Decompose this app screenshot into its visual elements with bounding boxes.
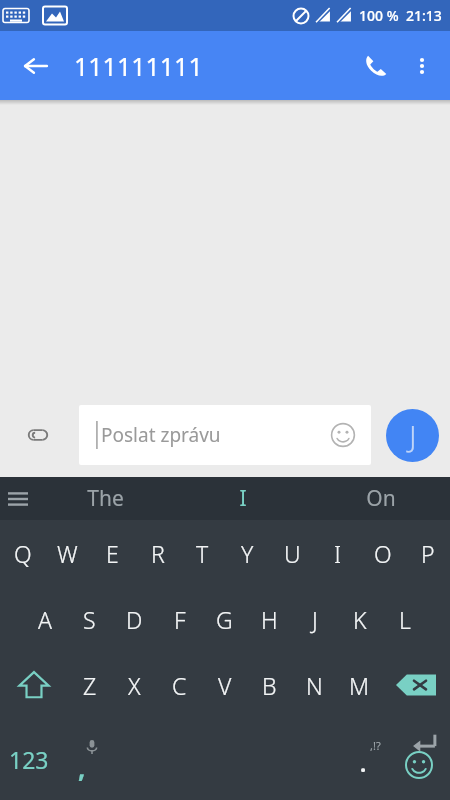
staticText: B: [262, 670, 277, 701]
button[interactable]: K: [337, 586, 382, 652]
staticText: P: [421, 538, 435, 569]
staticText: A: [38, 604, 52, 635]
staticText: W: [57, 538, 78, 569]
staticText: I: [334, 538, 342, 569]
button[interactable]: Q: [0, 520, 45, 586]
button[interactable]: F: [157, 586, 202, 652]
staticText: E: [106, 538, 119, 569]
button[interactable]: Comma and voice input: [58, 718, 105, 800]
button[interactable]: W: [45, 520, 90, 586]
button[interactable]: G: [202, 586, 247, 652]
button[interactable]: On: [312, 477, 450, 520]
staticText: D: [126, 604, 143, 635]
button[interactable]: Keyboard menu: [0, 477, 36, 520]
button[interactable]: X: [112, 652, 157, 718]
button[interactable]: 123: [0, 718, 58, 800]
button[interactable]: B: [247, 652, 292, 718]
button[interactable]: U: [270, 520, 315, 586]
staticText: On: [366, 484, 396, 513]
staticText: 100 %: [359, 6, 399, 25]
staticText: I: [239, 484, 247, 513]
button[interactable]: R: [135, 520, 180, 586]
staticText: 123: [9, 744, 49, 775]
button[interactable]: More options: [400, 44, 444, 88]
staticText: J: [312, 604, 318, 635]
staticText: S: [83, 604, 96, 635]
staticText: R: [151, 538, 165, 569]
staticText: O: [374, 538, 392, 569]
button[interactable]: Poslat zprávu: [79, 405, 371, 465]
staticText: M: [349, 670, 370, 701]
staticText: C: [172, 670, 187, 701]
staticText: X: [128, 670, 141, 701]
button[interactable]: O: [360, 520, 405, 586]
button[interactable]: Call: [352, 42, 400, 90]
button[interactable]: J: [292, 586, 337, 652]
staticText: ,!?: [370, 738, 381, 753]
staticText: H: [261, 604, 278, 635]
button[interactable]: L: [382, 586, 427, 652]
button[interactable]: Emoji: [323, 415, 363, 455]
staticText: Poslat zprávu: [101, 422, 221, 448]
staticText: .: [360, 748, 367, 778]
button[interactable]: D: [112, 586, 157, 652]
staticText: G: [216, 604, 233, 635]
button[interactable]: H: [247, 586, 292, 652]
button[interactable]: Shift: [0, 652, 67, 718]
button[interactable]: Period and punctuation: [340, 718, 387, 800]
button[interactable]: Emoji and enter: [387, 718, 450, 800]
staticText: Q: [14, 538, 32, 569]
staticText: 111111111: [74, 49, 203, 83]
button[interactable]: C: [157, 652, 202, 718]
button[interactable]: I: [315, 520, 360, 586]
button[interactable]: Attach: [18, 415, 58, 455]
button[interactable]: S: [67, 586, 112, 652]
button[interactable]: P: [405, 520, 450, 586]
button[interactable]: A: [22, 586, 67, 652]
staticText: N: [306, 670, 323, 701]
button[interactable]: V: [202, 652, 247, 718]
button[interactable]: E: [90, 520, 135, 586]
button[interactable]: N: [292, 652, 337, 718]
button[interactable]: Z: [67, 652, 112, 718]
button[interactable]: Backspace: [382, 652, 450, 718]
button[interactable]: Y: [225, 520, 270, 586]
staticText: ,: [78, 750, 86, 785]
staticText: L: [399, 604, 411, 635]
staticText: Z: [83, 670, 97, 701]
staticText: 21:13: [406, 6, 442, 25]
button[interactable]: I: [174, 477, 312, 520]
button[interactable]: M: [337, 652, 382, 718]
staticText: T: [196, 538, 209, 569]
staticText: The: [87, 484, 124, 513]
button[interactable]: T: [180, 520, 225, 586]
staticText: F: [174, 604, 186, 635]
staticText: K: [353, 604, 367, 635]
staticText: Y: [241, 538, 254, 569]
button[interactable]: Back: [14, 44, 58, 88]
staticText: J: [409, 415, 417, 456]
staticText: V: [218, 670, 232, 701]
button[interactable]: Send: [386, 409, 439, 462]
staticText: U: [284, 538, 301, 569]
button[interactable]: The: [36, 477, 174, 520]
